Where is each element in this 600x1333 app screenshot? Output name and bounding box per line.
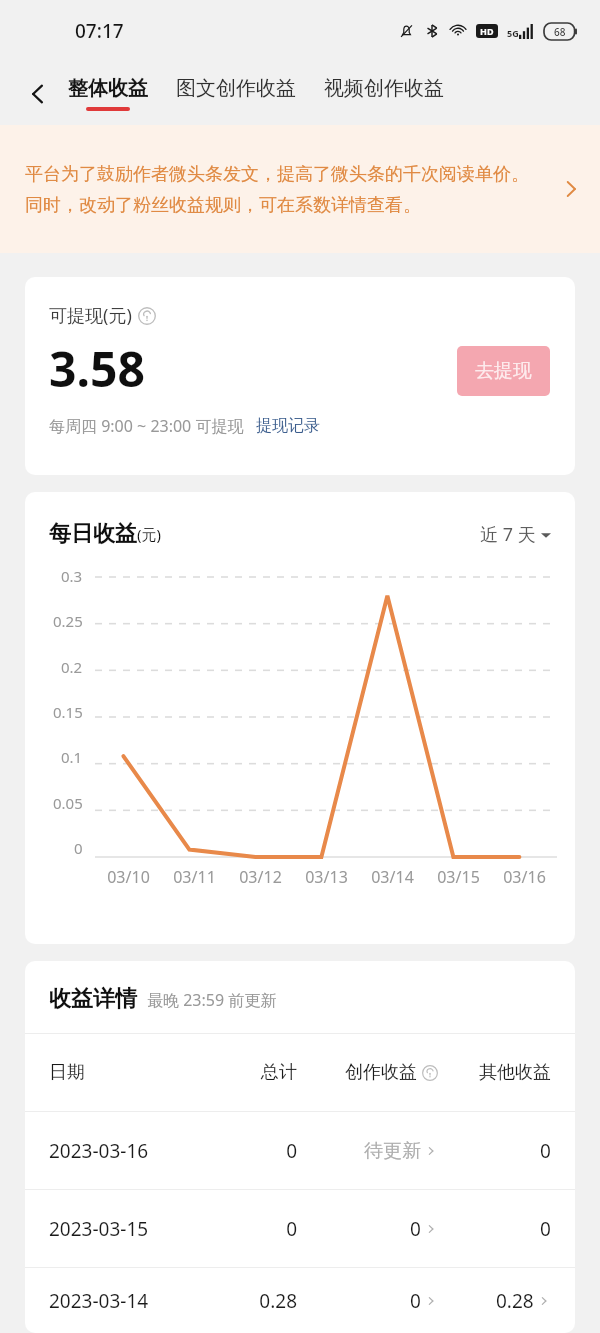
button[interactable]: 近 7 天 [480, 522, 551, 547]
staticText: 07:17 [75, 18, 124, 44]
staticText: 平台为了鼓励作者微头条发文，提高了微头条的千次阅读单价。同时，改动了粉丝收益规则… [25, 163, 544, 216]
staticText: 03/16 [503, 866, 546, 888]
staticText: 其他收益 [438, 1061, 551, 1084]
staticText: 图文创作收益 [176, 76, 296, 101]
staticText: 去提现 [475, 359, 532, 383]
button[interactable]: 图文创作收益 [176, 72, 296, 115]
staticText: (元) [137, 524, 162, 544]
staticText: 0.05 [53, 793, 83, 813]
button[interactable]: 视频创作收益 [324, 72, 444, 115]
button[interactable]: 整体收益 [68, 72, 148, 115]
staticText: 0.25 [53, 611, 83, 631]
staticText: 0 [540, 1138, 551, 1164]
button[interactable]: 2023-03-16 [25, 1112, 575, 1189]
staticText: 2023-03-16 [49, 1138, 201, 1164]
staticText: 近 7 天 [480, 522, 536, 547]
staticText: 待更新 [364, 1139, 421, 1163]
staticText: 0.15 [53, 702, 83, 722]
staticText: 03/11 [173, 866, 216, 888]
staticText: 68 [554, 25, 566, 39]
button[interactable]: Back [14, 70, 62, 118]
staticText: 3.58 [49, 336, 145, 401]
staticText: HD [480, 25, 494, 37]
staticText: 03/10 [107, 866, 150, 888]
staticText: 提现记录 [256, 416, 320, 436]
staticText: 03/12 [239, 866, 282, 888]
staticText: 0 [540, 1216, 551, 1242]
staticText: 0.28 [201, 1288, 297, 1314]
button[interactable]: 2023-03-14 [25, 1268, 575, 1333]
staticText: 0.1 [61, 747, 83, 767]
staticText: 总计 [201, 1061, 297, 1084]
button[interactable]: 说明 [138, 307, 156, 325]
staticText: 收益详情 [49, 985, 137, 1013]
staticText: 视频创作收益 [324, 76, 444, 101]
staticText: 0.28 [496, 1288, 534, 1314]
staticText: 0 [201, 1216, 297, 1242]
staticText: 最晚 23:59 前更新 [147, 989, 277, 1011]
staticText: 03/15 [437, 866, 480, 888]
staticText: 03/13 [305, 866, 348, 888]
staticText: 每日收益 [49, 520, 137, 548]
button[interactable]: 说明 [422, 1065, 438, 1081]
staticText: 5G [507, 27, 519, 39]
staticText: 0.3 [61, 566, 83, 586]
staticText: 0 [410, 1216, 421, 1242]
staticText: 每周四 9:00 ~ 23:00 可提现 [49, 415, 244, 437]
staticText: 0.2 [61, 657, 83, 677]
staticText: 0 [201, 1138, 297, 1164]
staticText: 整体收益 [68, 76, 148, 101]
button[interactable]: 提现记录 [256, 416, 320, 436]
button[interactable]: 2023-03-15 [25, 1190, 575, 1267]
staticText: 可提现(元) [49, 303, 132, 328]
staticText: 0 [410, 1288, 421, 1314]
staticText: 日期 [49, 1061, 201, 1084]
button[interactable]: 去提现 [457, 346, 550, 396]
staticText: 0 [74, 838, 83, 858]
staticText: 03/14 [371, 866, 414, 888]
button[interactable]: 平台为了鼓励作者微头条发文，提高了微头条的千次阅读单价。同时，改动了粉丝收益规则… [0, 125, 600, 253]
staticText: 创作收益 [345, 1061, 417, 1084]
staticText: 2023-03-14 [49, 1288, 201, 1314]
staticText: 2023-03-15 [49, 1216, 201, 1242]
